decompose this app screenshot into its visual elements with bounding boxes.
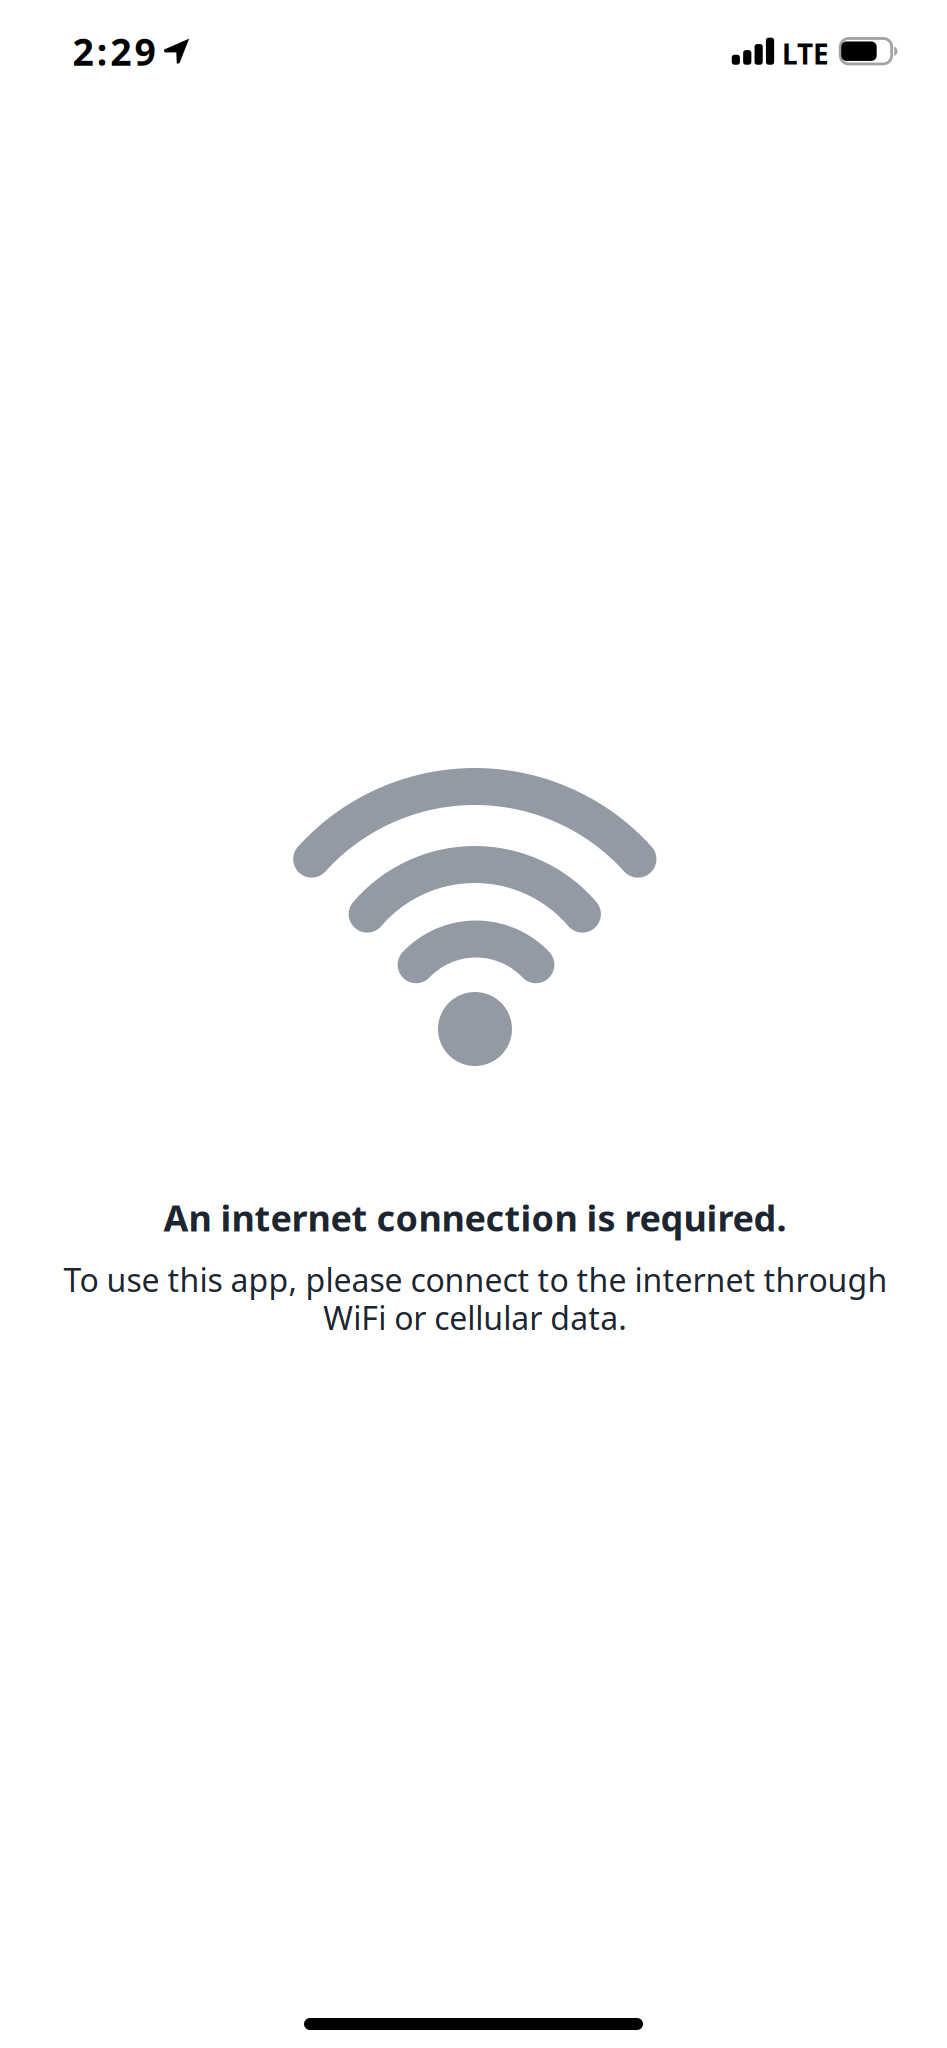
staticText: 9 (135, 26, 156, 76)
staticText: An internet connection is required. (163, 1194, 786, 1241)
staticText: To use this app, please connect to the i… (63, 1258, 887, 1301)
staticText: 2 (72, 26, 93, 76)
staticText: WiFi or cellular data. (323, 1296, 627, 1339)
staticText: 2 (110, 26, 131, 76)
staticText: : (97, 26, 107, 76)
staticText: LTE (782, 35, 829, 72)
